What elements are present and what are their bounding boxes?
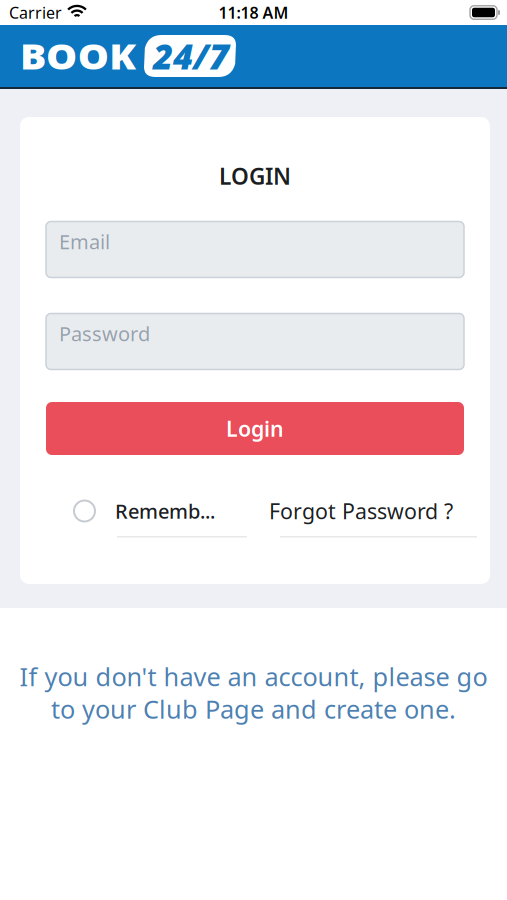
button[interactable]: Rememb... — [73, 498, 215, 524]
button[interactable]: Email — [46, 221, 464, 277]
staticText: Carrier — [9, 2, 62, 23]
button[interactable]: Password — [46, 313, 464, 369]
staticText: 24/7 — [153, 33, 229, 79]
staticText: Login — [226, 414, 284, 443]
staticText: 11:18 AM — [218, 2, 288, 23]
staticText: If you don't have an account, please go — [19, 660, 487, 693]
staticText: BOOK — [20, 33, 123, 79]
staticText: to your Club Page and create one. — [51, 692, 456, 726]
button[interactable]: Login — [46, 402, 464, 455]
staticText: Password — [59, 320, 150, 347]
staticText: Forgot Password ? — [269, 497, 453, 525]
staticText: Rememb... — [115, 498, 215, 524]
button[interactable]: Forgot Password ? — [269, 497, 453, 525]
staticText: LOGIN — [219, 161, 291, 191]
staticText: Email — [59, 228, 110, 255]
